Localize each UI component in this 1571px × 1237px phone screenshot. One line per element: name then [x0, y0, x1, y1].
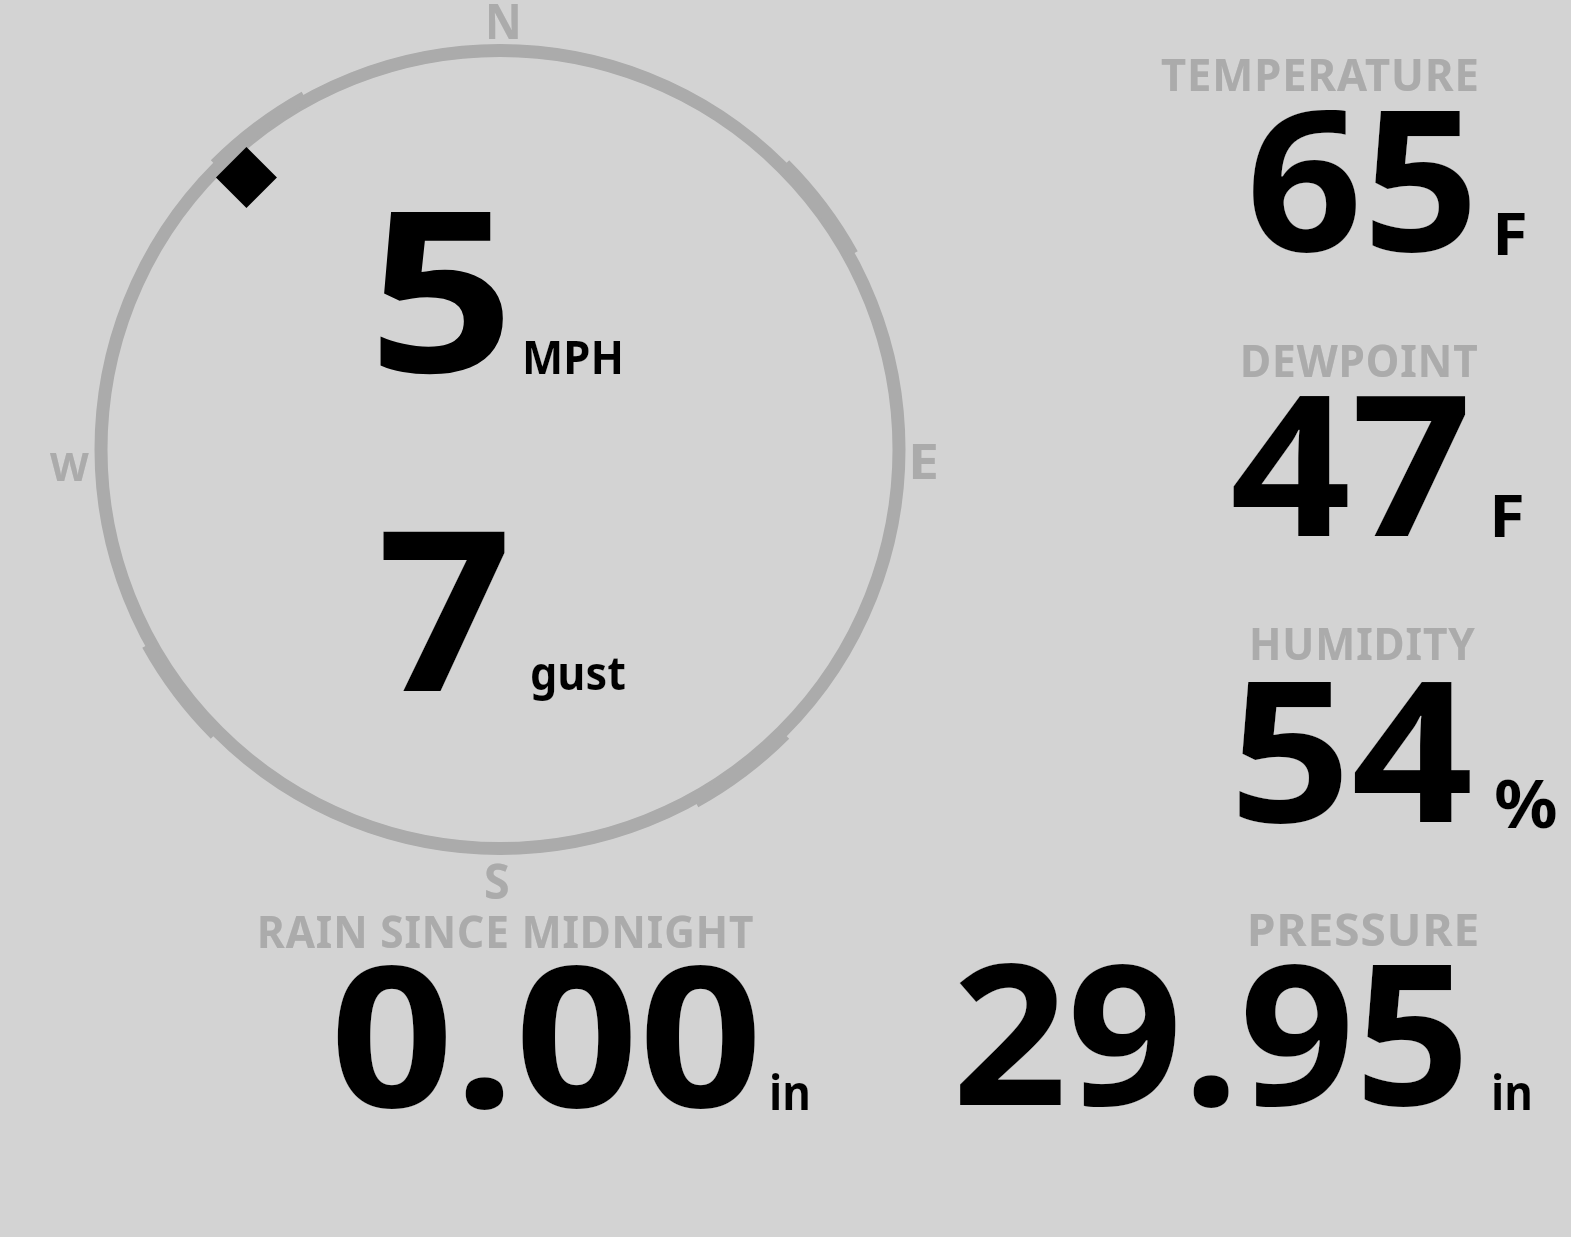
staticText: 47 — [1230, 326, 1473, 593]
button[interactable]: Humidity 54 percent — [1150, 605, 1570, 845]
staticText: 29.95 — [952, 895, 1471, 1162]
staticText: F — [1489, 474, 1526, 554]
button[interactable]: Pressure 29.95 inches — [940, 895, 1560, 1130]
staticText: 65 — [1246, 41, 1480, 308]
staticText: RAIN SINCE MIDNIGHT — [257, 900, 755, 961]
staticText: in — [769, 1058, 811, 1125]
staticText: 7 — [377, 454, 512, 756]
button[interactable]: Rain since midnight 0.00 inches — [240, 900, 860, 1135]
button[interactable]: Temperature 65 degrees Fahrenheit — [1150, 40, 1570, 270]
staticText: DEWPOINT — [1240, 329, 1479, 390]
staticText: N — [485, 0, 523, 53]
button[interactable]: Wind 5 miles per hour, gusting 7, from t… — [90, 0, 910, 900]
staticText: TEMPERATURE — [1161, 43, 1480, 104]
staticText: 54 — [1229, 612, 1474, 879]
staticText: gust — [530, 640, 627, 704]
staticText: 5 — [368, 133, 516, 438]
staticText: MPH — [522, 324, 624, 388]
staticText: S — [484, 847, 510, 914]
staticText: in — [1491, 1058, 1533, 1125]
staticText: 0.00 — [330, 897, 763, 1164]
staticText: F — [1492, 192, 1529, 272]
staticText: % — [1494, 757, 1558, 847]
staticText: E — [908, 428, 939, 493]
staticText: HUMIDITY — [1249, 612, 1476, 673]
staticText: W — [50, 438, 89, 492]
staticText: PRESSURE — [1247, 898, 1480, 959]
button[interactable]: Dewpoint 47 degrees Fahrenheit — [1150, 320, 1570, 555]
